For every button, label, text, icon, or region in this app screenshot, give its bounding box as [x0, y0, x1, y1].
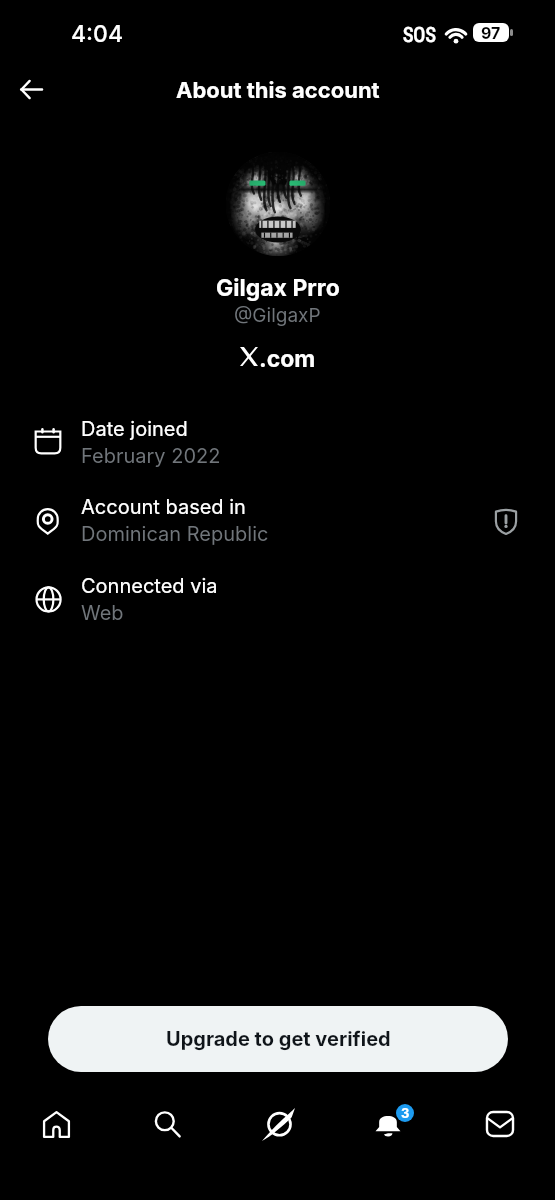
staticText: 97: [481, 23, 501, 42]
button[interactable]: Grok: [254, 1100, 302, 1148]
button[interactable]: Notifications: [365, 1100, 413, 1148]
staticText: 3: [401, 1105, 410, 1121]
staticText: Dominican Republic: [81, 522, 269, 546]
staticText: SOS: [403, 23, 436, 46]
button[interactable]: Account based in: [0, 480, 555, 552]
staticText: 4:04: [71, 20, 124, 48]
staticText: Web: [81, 601, 124, 625]
button[interactable]: Account info: [486, 496, 526, 536]
button[interactable]: Search: [143, 1100, 191, 1148]
button[interactable]: Connected via: [0, 559, 555, 631]
staticText: Connected via: [81, 574, 218, 598]
button[interactable]: Upgrade to get verified: [48, 1006, 508, 1072]
staticText: Account based in: [81, 495, 246, 519]
staticText: @GilgaxP: [234, 304, 321, 327]
staticText: Upgrade to get verified: [166, 1027, 391, 1051]
staticText: .com: [259, 345, 316, 373]
button[interactable]: Back: [8, 66, 54, 112]
staticText: About this account: [176, 77, 380, 104]
button[interactable]: Date joined: [0, 402, 555, 474]
staticText: Gilgax Prro: [216, 274, 340, 302]
button[interactable]: Messages: [476, 1100, 524, 1148]
staticText: Date joined: [81, 417, 188, 441]
button[interactable]: Home: [32, 1100, 80, 1148]
staticText: February 2022: [81, 444, 221, 468]
